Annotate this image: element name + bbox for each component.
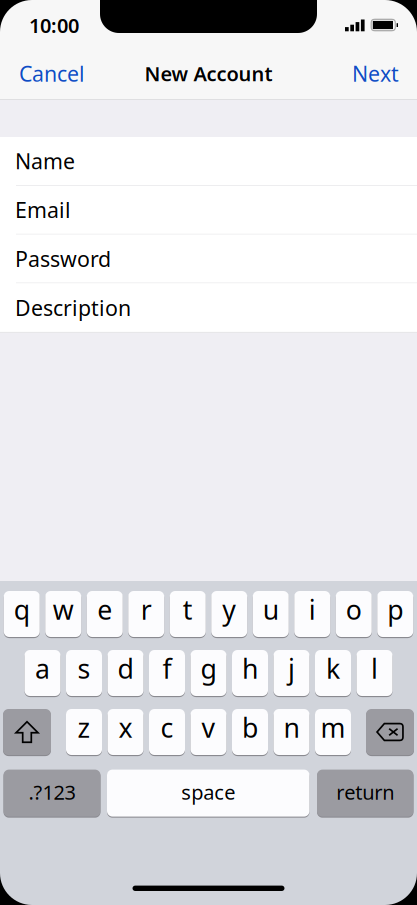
button[interactable]: m [315, 709, 351, 755]
button[interactable]: x [107, 709, 143, 755]
staticText: i [309, 592, 316, 627]
staticText: space [181, 779, 235, 805]
button[interactable]: d [107, 650, 143, 696]
staticText: h [242, 651, 258, 686]
staticText: o [346, 592, 362, 627]
staticText: g [200, 651, 216, 686]
staticText: Password [15, 244, 111, 273]
staticText: n [283, 710, 299, 745]
staticText: s [77, 651, 90, 686]
staticText: return [336, 779, 394, 805]
button[interactable]: Description [0, 283, 417, 332]
staticText: New Account [144, 60, 272, 87]
button[interactable]: z [66, 709, 102, 755]
button[interactable]: Password [0, 235, 417, 283]
staticText: a [35, 651, 50, 686]
staticText: f [162, 651, 171, 686]
button[interactable]: f [149, 650, 185, 696]
button[interactable]: a [24, 650, 60, 696]
button[interactable]: s [66, 650, 102, 696]
button[interactable]: l [356, 650, 392, 696]
staticText: r [141, 592, 152, 627]
button[interactable]: j [273, 650, 309, 696]
staticText: j [288, 651, 295, 686]
button[interactable]: p [377, 591, 413, 637]
staticText: 10:00 [29, 12, 79, 39]
staticText: u [263, 592, 279, 627]
button[interactable]: space [107, 770, 309, 817]
button[interactable]: Email [0, 186, 417, 235]
button[interactable]: o [336, 591, 372, 637]
button[interactable]: Name [0, 137, 417, 186]
staticText: x [118, 710, 132, 745]
staticText: t [183, 592, 193, 627]
button[interactable]: b [232, 709, 268, 755]
button[interactable]: g [190, 650, 226, 696]
staticText: p [387, 592, 403, 627]
staticText: w [53, 592, 74, 627]
staticText: b [242, 710, 258, 745]
button[interactable]: n [273, 709, 309, 755]
button[interactable]: Delete [366, 709, 414, 755]
staticText: v [201, 710, 215, 745]
button[interactable]: i [294, 591, 330, 637]
button[interactable]: v [190, 709, 226, 755]
staticText: e [97, 592, 112, 627]
button[interactable]: .?123 [3, 770, 100, 817]
staticText: c [160, 710, 173, 745]
staticText: Next [352, 59, 399, 88]
button[interactable]: h [232, 650, 268, 696]
staticText: Description [15, 293, 131, 322]
button[interactable]: Shift [3, 709, 51, 755]
button[interactable]: k [315, 650, 351, 696]
staticText: m [320, 710, 345, 745]
staticText: Cancel [19, 59, 85, 88]
staticText: k [326, 651, 340, 686]
button[interactable]: e [87, 591, 123, 637]
staticText: q [14, 592, 30, 627]
button[interactable]: r [128, 591, 164, 637]
staticText: y [222, 592, 236, 627]
button[interactable]: c [149, 709, 185, 755]
button[interactable]: w [45, 591, 81, 637]
staticText: d [117, 651, 133, 686]
button[interactable]: Next [307, 47, 417, 100]
button[interactable]: return [317, 770, 413, 817]
staticText: Name [15, 147, 75, 175]
staticText: z [77, 710, 90, 745]
button[interactable]: y [211, 591, 247, 637]
staticText: l [371, 651, 378, 686]
button[interactable]: Cancel [0, 47, 110, 100]
staticText: .?123 [28, 779, 75, 805]
button[interactable]: u [253, 591, 289, 637]
button[interactable]: q [4, 591, 40, 637]
staticText: Email [15, 196, 71, 224]
button[interactable]: t [170, 591, 206, 637]
